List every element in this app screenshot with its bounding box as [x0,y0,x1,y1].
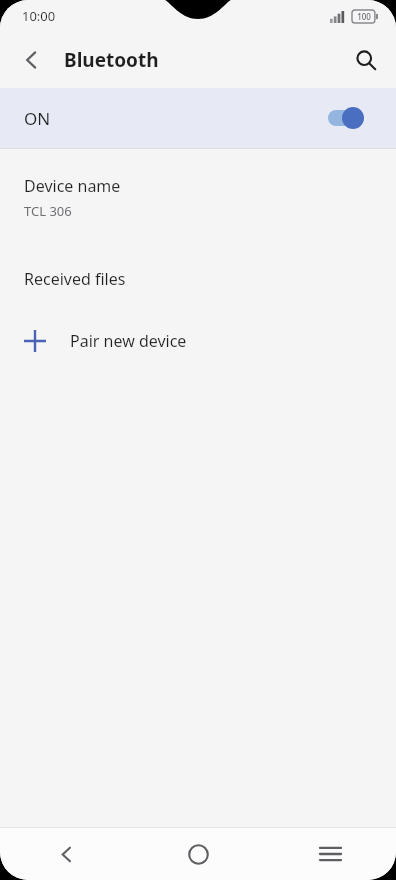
staticText: TCL 306 [24,202,72,220]
button[interactable]: Recent apps [264,828,396,880]
button[interactable]: Search [344,38,388,82]
button[interactable]: Device name [0,149,396,232]
button[interactable]: Bluetooth toggle [328,103,374,133]
staticText: ON [24,107,51,130]
button[interactable]: Home [132,828,264,880]
staticText: Received files [24,268,126,290]
staticText: Pair new device [70,330,187,352]
staticText: 100 [357,11,371,22]
button[interactable]: Received files [0,232,396,304]
button[interactable]: Pair new device [0,304,396,368]
staticText: 10:00 [22,7,56,25]
staticText: Bluetooth [64,47,159,73]
button[interactable]: ON [0,88,396,148]
staticText: Device name [24,175,121,197]
button[interactable]: Back [0,828,132,880]
button[interactable]: Back [10,38,54,82]
